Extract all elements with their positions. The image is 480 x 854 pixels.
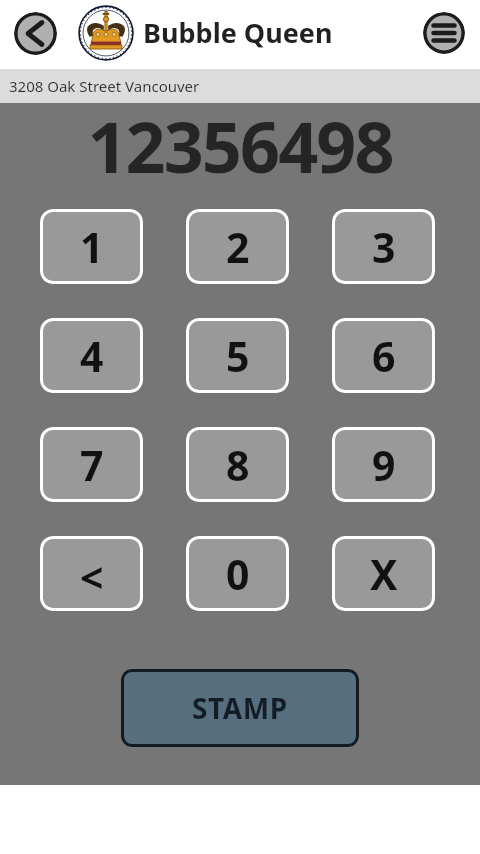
staticText: X	[370, 546, 398, 602]
staticText: Bubble Queen	[143, 14, 333, 51]
staticText: 6	[372, 328, 396, 384]
button[interactable]: 8	[186, 427, 289, 502]
button[interactable]: 7	[40, 427, 143, 502]
button[interactable]: 1	[40, 209, 143, 284]
button[interactable]: Menu	[423, 12, 465, 54]
staticText: 4	[80, 328, 104, 384]
button[interactable]: 9	[332, 427, 435, 502]
button[interactable]: STAMP	[121, 669, 359, 747]
staticText: 3	[372, 219, 396, 275]
staticText: 5	[226, 328, 250, 384]
staticText: <	[80, 549, 104, 605]
staticText: 1	[80, 219, 104, 275]
staticText: 0	[226, 546, 250, 602]
button[interactable]: Back	[14, 12, 57, 55]
button[interactable]: 0	[186, 536, 289, 611]
button[interactable]: 4	[40, 318, 143, 393]
staticText: 9	[372, 437, 396, 493]
button[interactable]: 3	[332, 209, 435, 284]
button[interactable]: <	[40, 536, 143, 611]
staticText: 2	[226, 219, 250, 275]
button[interactable]: 5	[186, 318, 289, 393]
button[interactable]: 2	[186, 209, 289, 284]
button[interactable]: 6	[332, 318, 435, 393]
staticText: 8	[226, 437, 250, 493]
staticText: 7	[80, 437, 104, 493]
staticText: 3208 Oak Street Vancouver	[9, 76, 200, 96]
button[interactable]: X	[332, 536, 435, 611]
staticText: 12356498	[0, 98, 480, 193]
staticText: STAMP	[192, 689, 288, 727]
